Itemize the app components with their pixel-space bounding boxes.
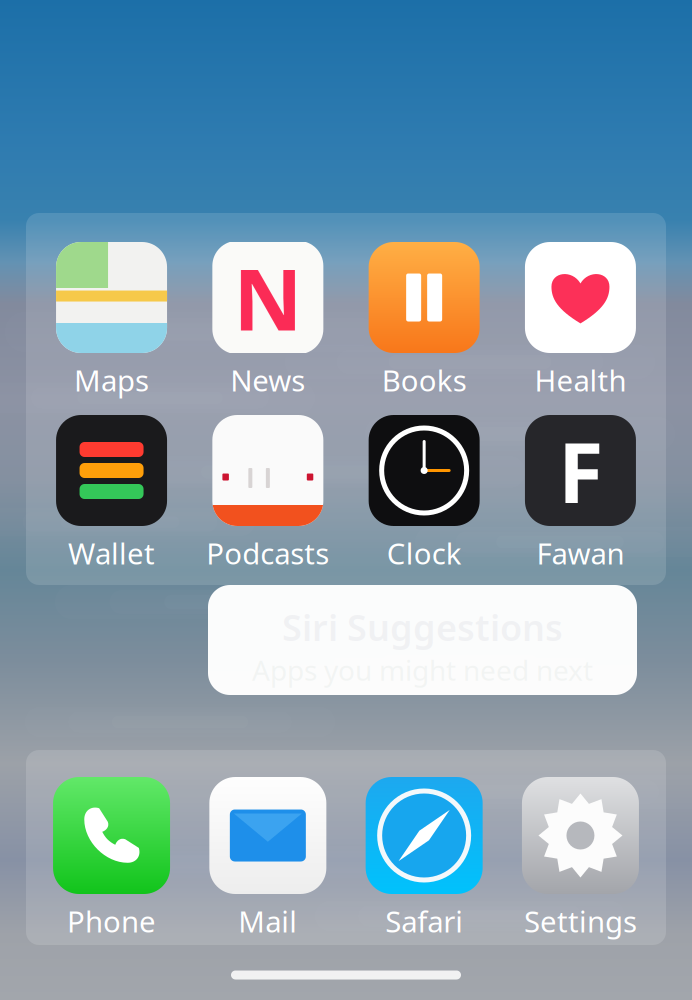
staticText: Mail (238, 901, 297, 940)
staticText: Health (534, 360, 626, 399)
staticText: Maps (74, 360, 149, 399)
button[interactable]: Settings (502, 777, 659, 894)
staticText: N (233, 241, 302, 354)
button[interactable]: Health (502, 242, 659, 353)
staticText: Wallet (68, 533, 155, 572)
button[interactable]: F (502, 415, 659, 526)
staticText: Books (382, 360, 467, 399)
button[interactable]: Mail (190, 777, 346, 894)
staticText: News (230, 360, 305, 399)
button[interactable]: Wallet (33, 415, 190, 526)
button[interactable]: Phone (33, 777, 190, 894)
staticText: Fawan (536, 533, 624, 572)
staticText: Apps you might need next (252, 651, 593, 689)
button[interactable]: Siri Suggestions (208, 585, 637, 695)
staticText: Clock (387, 533, 462, 572)
staticText: Safari (385, 901, 463, 940)
staticText: F (558, 416, 603, 525)
button[interactable]: Podcasts (190, 415, 346, 526)
button[interactable]: Safari (346, 777, 502, 894)
button[interactable]: Clock (346, 415, 502, 526)
button[interactable]: Maps (33, 242, 190, 353)
button[interactable]: Books (346, 242, 502, 353)
staticText: Phone (67, 901, 156, 940)
button[interactable]: N (190, 242, 346, 353)
staticText: Siri Suggestions (282, 603, 563, 651)
staticText: Podcasts (206, 533, 329, 572)
staticText: Settings (524, 901, 637, 940)
